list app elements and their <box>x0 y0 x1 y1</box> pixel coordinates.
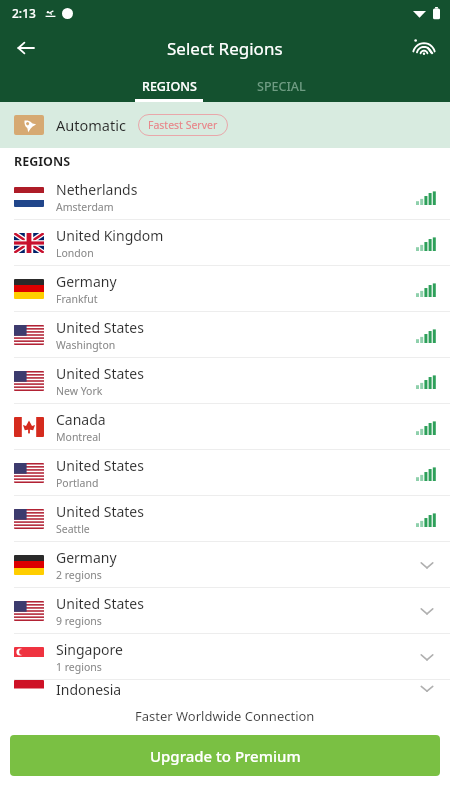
button[interactable]: Germany <box>0 542 450 587</box>
staticText: Canada <box>56 410 106 429</box>
staticText: United States <box>56 318 144 337</box>
button[interactable]: Singapore <box>0 634 450 679</box>
staticText: Faster Worldwide Connection <box>135 707 315 725</box>
staticText: Montreal <box>56 430 101 444</box>
staticText: Portland <box>56 476 99 490</box>
staticText: United Kingdom <box>56 226 164 245</box>
button[interactable]: REGIONS <box>113 70 225 102</box>
button[interactable]: Netherlands <box>0 174 450 219</box>
button[interactable]: United Kingdom <box>0 220 450 265</box>
button[interactable]: United States <box>0 312 450 357</box>
staticText: Frankfut <box>56 292 98 306</box>
staticText: Automatic <box>56 115 126 135</box>
staticText: 9 regions <box>56 614 102 628</box>
staticText: London <box>56 246 94 260</box>
staticText: Singapore <box>56 640 123 659</box>
staticText: 2 regions <box>56 568 102 582</box>
staticText: SPECIAL <box>257 78 306 95</box>
staticText: Select Regions <box>167 37 283 60</box>
staticText: REGIONS <box>142 78 197 95</box>
staticText: United States <box>56 594 144 613</box>
staticText: Seattle <box>56 522 90 536</box>
button[interactable]: Network settings <box>404 28 444 68</box>
staticText: Fastest Server <box>148 118 218 132</box>
staticText: Germany <box>56 272 117 291</box>
button[interactable]: Canada <box>0 404 450 449</box>
staticText: Indonesia <box>56 680 122 697</box>
button[interactable]: United States <box>0 450 450 495</box>
button[interactable]: Automatic <box>0 102 450 148</box>
staticText: Germany <box>56 548 117 567</box>
staticText: United States <box>56 502 144 521</box>
staticText: United States <box>56 456 144 475</box>
staticText: Upgrade to Premium <box>150 746 301 766</box>
staticText: Netherlands <box>56 180 138 199</box>
button[interactable]: Upgrade to Premium <box>10 735 440 776</box>
button[interactable]: SPECIAL <box>225 70 337 102</box>
button[interactable]: United States <box>0 496 450 541</box>
staticText: REGIONS <box>14 153 71 170</box>
staticText: United States <box>56 364 144 383</box>
button[interactable]: Back <box>6 28 46 68</box>
button[interactable]: Indonesia <box>0 680 450 697</box>
staticText: Washington <box>56 338 116 352</box>
staticText: Amsterdam <box>56 200 114 214</box>
staticText: 2:13 <box>12 5 36 21</box>
staticText: New York <box>56 384 103 398</box>
staticText: 1 regions <box>56 660 102 674</box>
button[interactable]: United States <box>0 588 450 633</box>
button[interactable]: Germany <box>0 266 450 311</box>
button[interactable]: United States <box>0 358 450 403</box>
